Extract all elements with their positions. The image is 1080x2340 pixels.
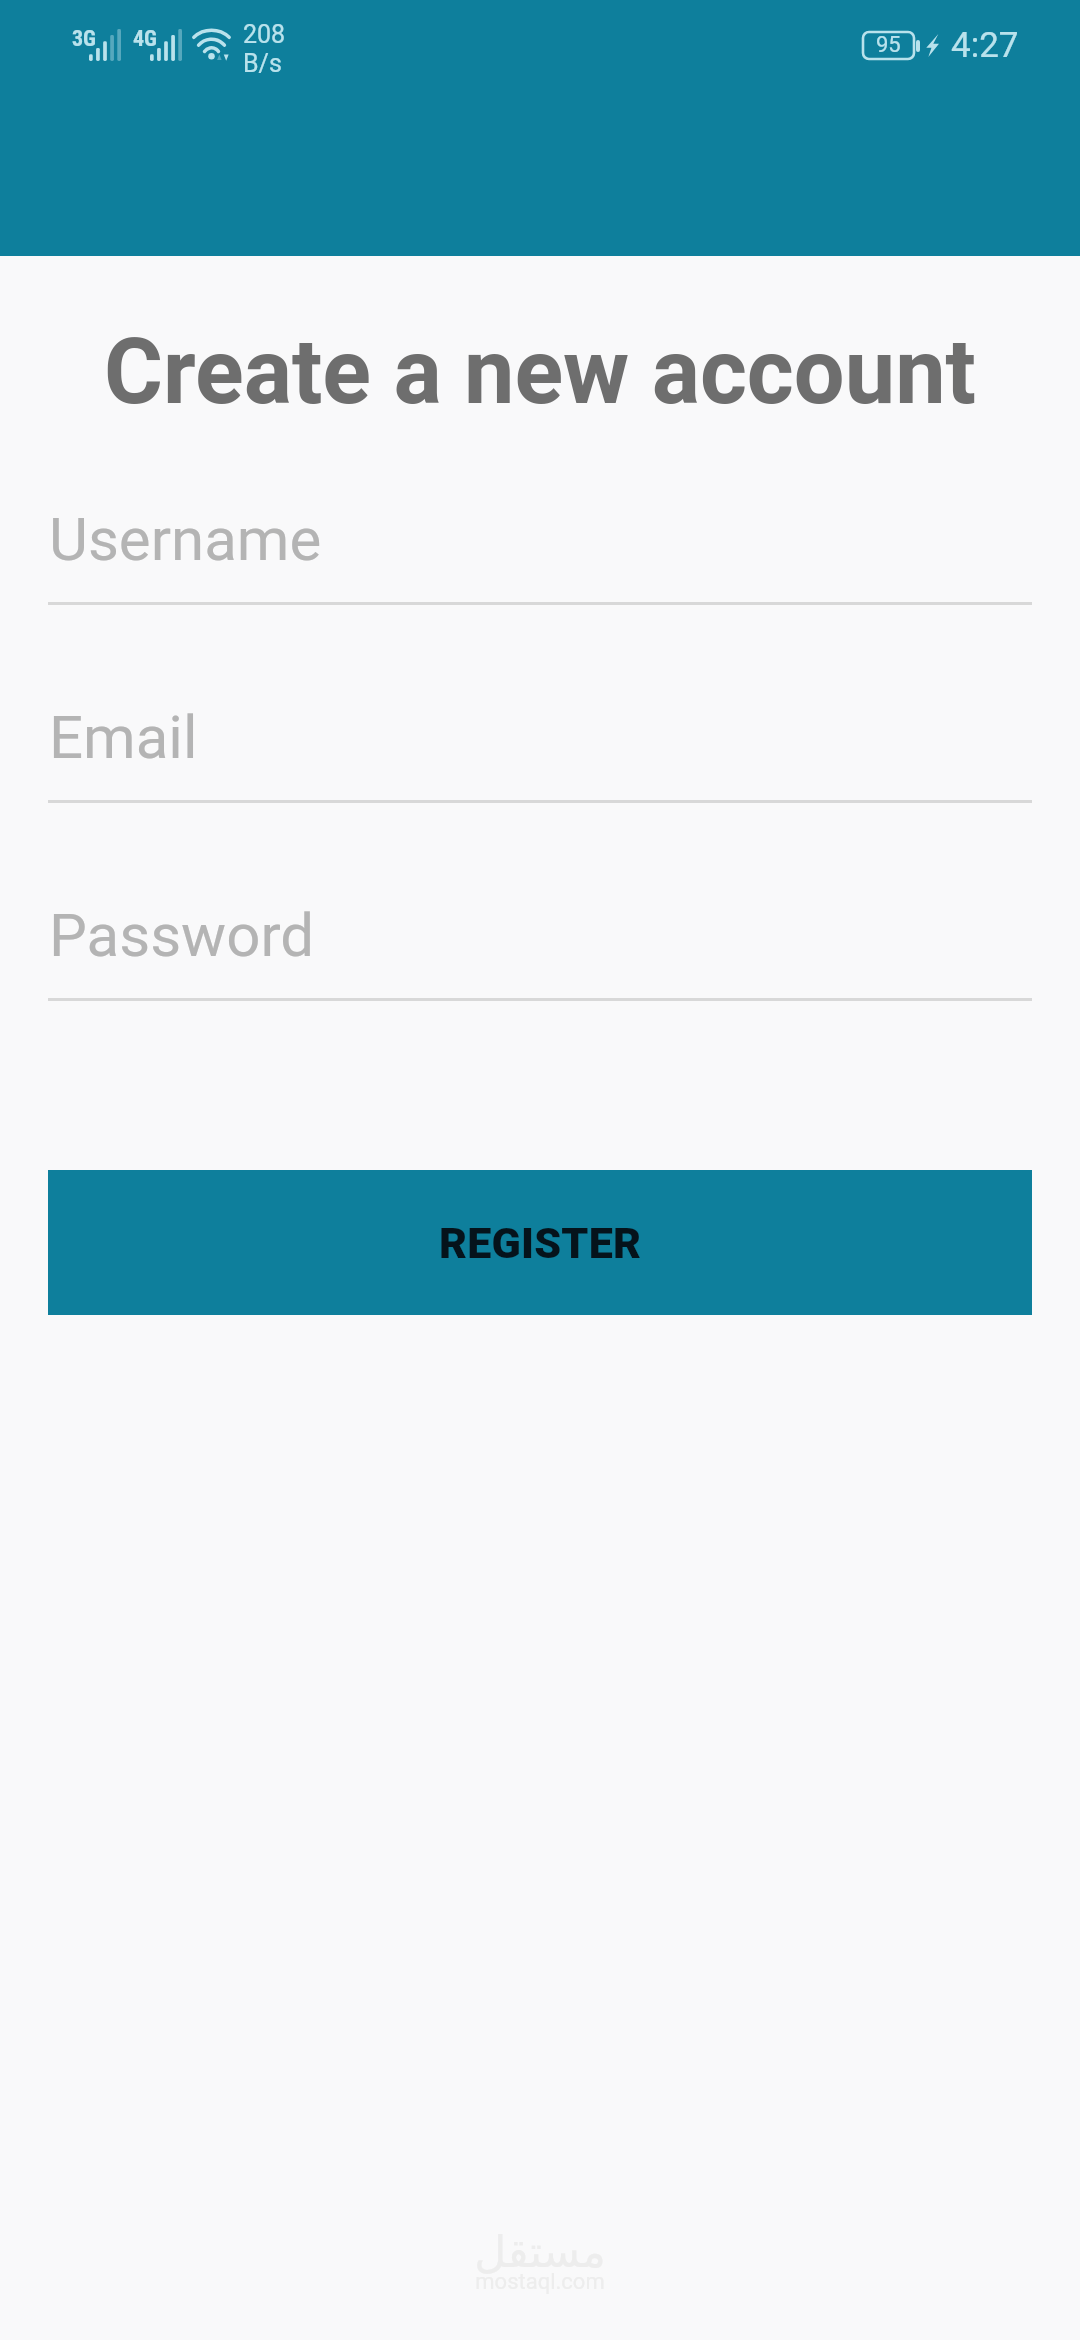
staticText: Email <box>49 702 198 772</box>
other: 3G signal strength <box>72 26 104 58</box>
staticText: 4:27 <box>951 25 1019 66</box>
staticText: 3G <box>72 26 96 52</box>
staticText: B/s <box>243 49 282 78</box>
staticText: REGISTER <box>439 1218 642 1268</box>
other: Charging <box>926 34 939 57</box>
staticText: 95 <box>876 32 901 58</box>
button[interactable]: Email <box>48 700 1032 803</box>
staticText: Username <box>49 504 322 574</box>
staticText: 208 <box>243 20 286 49</box>
staticText: Password <box>49 900 315 970</box>
staticText: 4G <box>133 26 157 52</box>
button[interactable]: Username <box>48 502 1032 605</box>
other: Wi-Fi <box>194 28 229 61</box>
button[interactable]: Password <box>48 898 1032 1001</box>
other: Battery 95 percent <box>863 32 920 59</box>
other: 4G signal strength <box>133 26 165 58</box>
staticText: Create a new account <box>0 320 1080 425</box>
button[interactable]: REGISTER <box>48 1170 1032 1315</box>
